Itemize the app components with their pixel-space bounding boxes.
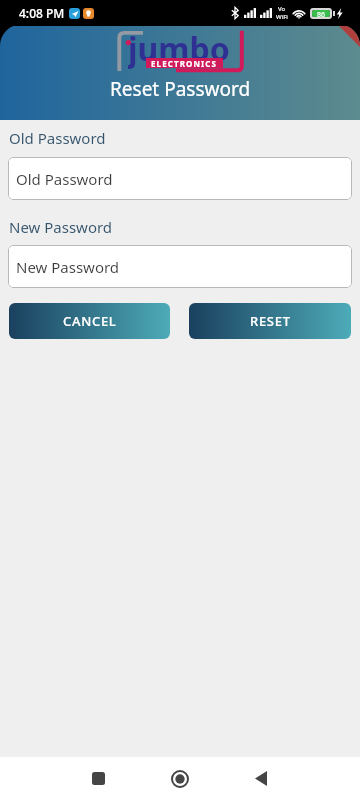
staticText: Old Password (16, 169, 113, 189)
staticText: New Password (16, 257, 120, 277)
staticText: ELECTRONICS (151, 58, 218, 68)
button[interactable]: RESET (189, 303, 351, 339)
button[interactable]: Recent apps (74, 757, 123, 800)
staticText: CANCEL (63, 312, 117, 330)
staticText: 86 (317, 10, 326, 17)
staticText: WiFi (276, 13, 288, 21)
button[interactable]: New Password (8, 245, 352, 288)
staticText: Old Password (9, 128, 106, 148)
button[interactable]: CANCEL (9, 303, 170, 339)
staticText: New Password (9, 217, 113, 237)
staticText: 4:08 PM (19, 5, 65, 21)
button[interactable]: Home (155, 757, 204, 800)
staticText: Reset Password (110, 76, 251, 102)
button[interactable]: Old Password (8, 157, 352, 200)
button[interactable]: Back (236, 757, 285, 800)
staticText: RESET (250, 312, 291, 330)
staticText: jumbo (128, 27, 230, 70)
staticText: Vo (278, 5, 286, 13)
